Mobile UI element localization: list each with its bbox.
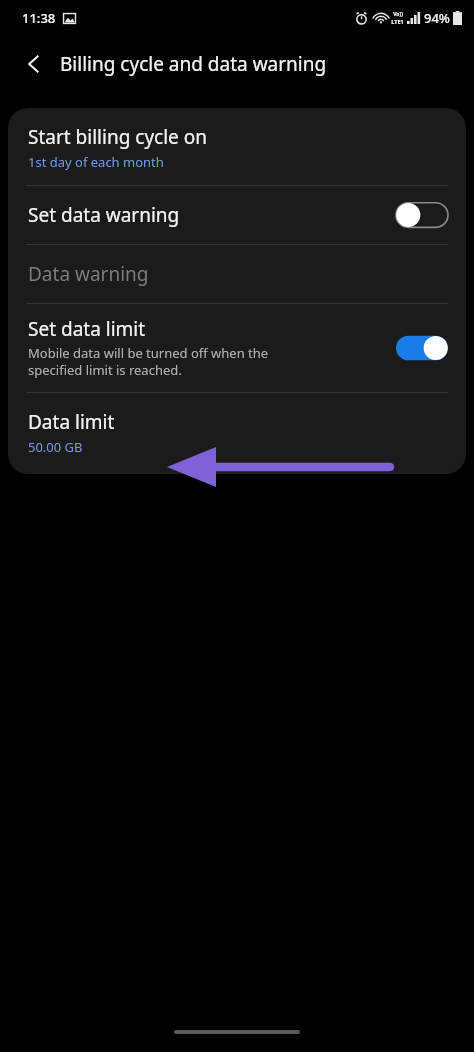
staticText: 94%	[424, 9, 450, 27]
button[interactable]: Back	[16, 46, 52, 82]
staticText: Set data limit	[28, 316, 146, 342]
staticText: Vo))	[393, 11, 403, 18]
button[interactable]: Data limit	[8, 393, 466, 474]
staticText: 1st day of each month	[28, 153, 164, 171]
staticText: 11:38	[22, 9, 56, 27]
button[interactable]: Start billing cycle on	[8, 108, 466, 185]
staticText: Mobile data will be turned off when the …	[28, 344, 318, 379]
staticText: Billing cycle and data warning	[60, 51, 327, 77]
button[interactable]: Set data limit	[8, 304, 466, 392]
staticText: 50.00 GB	[28, 438, 83, 456]
staticText: Data limit	[28, 409, 115, 435]
staticText: Set data warning	[28, 202, 396, 228]
button[interactable]: Toggle off	[396, 200, 448, 230]
button[interactable]: Toggle on	[396, 333, 448, 363]
button[interactable]: Data warning	[8, 245, 466, 303]
staticText: Data warning	[28, 261, 149, 287]
staticText: Start billing cycle on	[28, 124, 207, 150]
staticText: LTE1	[391, 18, 404, 25]
button[interactable]: Set data warning	[8, 186, 466, 244]
